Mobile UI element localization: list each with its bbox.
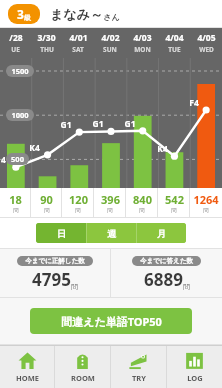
staticText: まなみ～ (50, 6, 103, 22)
staticText: G1 (60, 119, 72, 131)
staticText: 問 (13, 207, 19, 214)
button[interactable]: 日 (36, 223, 86, 243)
staticText: 週 (107, 228, 116, 239)
button[interactable]: TRY (111, 346, 166, 388)
staticText: TRY (132, 373, 146, 383)
staticText: 4/05 (197, 32, 216, 44)
staticText: 問 (139, 207, 145, 214)
staticText: 今までに答えた数 (140, 257, 193, 265)
staticText: 問 (107, 207, 113, 214)
staticText: SAT (72, 45, 84, 54)
staticText: 級 (24, 13, 31, 22)
staticText: 1000 (11, 110, 29, 120)
button[interactable]: 月 (137, 223, 186, 243)
staticText: 問 (183, 282, 190, 291)
staticText: 日 (57, 228, 66, 239)
staticText: 間違えた単語TOP50 (61, 314, 162, 329)
button[interactable]: HOME (0, 346, 54, 388)
staticText: 問 (171, 207, 177, 214)
staticText: 542 (165, 192, 184, 207)
staticText: 月 (157, 228, 166, 239)
staticText: 問 (203, 207, 209, 214)
staticText: 3/30 (37, 32, 56, 44)
staticText: 18 (9, 192, 22, 207)
staticText: WED (199, 45, 214, 54)
staticText: 4/02 (101, 32, 120, 44)
staticText: 840 (133, 192, 152, 207)
staticText: K4 (29, 142, 40, 154)
staticText: G1 (124, 118, 136, 130)
button[interactable]: LOG (167, 346, 222, 388)
staticText: 4/04 (165, 32, 184, 44)
staticText: 1264 (193, 192, 219, 207)
staticText: /28 (9, 32, 23, 44)
staticText: 4795 (32, 268, 71, 291)
staticText: 4/01 (69, 32, 88, 44)
staticText: 396 (101, 192, 120, 207)
button[interactable]: 週 (87, 223, 136, 243)
button[interactable]: 間違えた単語TOP50 (30, 308, 192, 334)
staticText: 3 (17, 6, 24, 22)
staticText: 120 (69, 192, 88, 207)
staticText: さん (103, 12, 120, 22)
staticText: 問 (71, 282, 78, 291)
staticText: 4 (1, 154, 6, 166)
staticText: 今までに正解した数 (25, 257, 85, 265)
staticText: 4/03 (133, 32, 152, 44)
staticText: HOME (16, 373, 39, 383)
staticText: 1500 (11, 66, 29, 76)
staticText: F4 (189, 97, 199, 109)
staticText: G1 (92, 118, 104, 130)
staticText: LOG (187, 373, 203, 383)
staticText: ROOM (71, 373, 95, 383)
button[interactable]: 3 (8, 4, 40, 24)
staticText: K4 (157, 143, 168, 155)
button[interactable]: ROOM (55, 346, 110, 388)
staticText: UE (11, 45, 20, 54)
staticText: THU (40, 45, 54, 54)
staticText: 500 (11, 154, 24, 164)
staticText: SUN (103, 45, 117, 54)
staticText: 6889 (144, 268, 183, 291)
staticText: MON (134, 45, 151, 54)
staticText: 問 (44, 207, 50, 214)
staticText: TUE (168, 45, 181, 54)
staticText: 問 (75, 207, 81, 214)
staticText: 90 (40, 192, 53, 207)
